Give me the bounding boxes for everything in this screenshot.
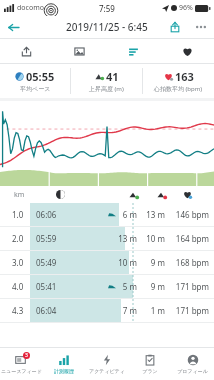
- button[interactable]: More options: [188, 16, 214, 38]
- staticText: km: [14, 190, 25, 200]
- staticText: アクティビティ: [89, 368, 125, 374]
- staticText: 6 m: [109, 209, 137, 220]
- button[interactable]: 05:55: [0, 64, 70, 98]
- staticText: 05:41: [36, 281, 57, 292]
- staticText: 3: [25, 352, 28, 359]
- staticText: ニュースフィード: [1, 368, 42, 374]
- button[interactable]: 3: [0, 348, 42, 380]
- staticText: 7 m: [109, 305, 137, 316]
- button[interactable]: アクティビティ: [85, 348, 128, 380]
- staticText: 9 m: [137, 257, 165, 268]
- button[interactable]: プロフィール: [171, 348, 214, 380]
- staticText: 4.3: [12, 305, 24, 316]
- button[interactable]: 41: [71, 64, 142, 98]
- staticText: 4.0: [12, 281, 24, 292]
- staticText: 13 m: [137, 209, 165, 220]
- staticText: 96%: [179, 3, 193, 13]
- staticText: 平均ペース: [20, 85, 51, 93]
- staticText: 1 m: [137, 305, 165, 316]
- staticText: 163: [175, 69, 194, 84]
- button[interactable]: 4.0: [0, 275, 214, 298]
- staticText: 05:55: [26, 69, 55, 84]
- staticText: 05:59: [36, 233, 57, 244]
- button[interactable]: Share: [162, 16, 188, 38]
- staticText: 05:49: [36, 257, 57, 268]
- button[interactable]: Chart settings: [106, 39, 160, 63]
- staticText: 06:04: [36, 305, 57, 316]
- button[interactable]: 計測履歴: [42, 348, 85, 380]
- button[interactable]: 2.0: [0, 227, 214, 250]
- button[interactable]: Export: [0, 39, 53, 63]
- staticText: 13 m: [109, 233, 137, 244]
- button[interactable]: 4.3: [0, 299, 214, 322]
- staticText: 計測履歴: [54, 368, 74, 374]
- button[interactable]: 163: [143, 64, 214, 98]
- staticText: 2019/11/25 - 6:45: [66, 20, 148, 34]
- staticText: 164 bpm: [165, 233, 209, 244]
- staticText: 171 bpm: [165, 305, 209, 316]
- staticText: 168 bpm: [165, 257, 209, 268]
- staticText: 2.0: [12, 233, 24, 244]
- staticText: 10 m: [137, 233, 165, 244]
- button[interactable]: 1.0: [0, 203, 214, 226]
- button[interactable]: プラン: [128, 348, 171, 380]
- staticText: 3.0: [12, 257, 24, 268]
- staticText: 10 m: [109, 257, 137, 268]
- staticText: 1.0: [12, 209, 24, 220]
- staticText: 上昇高度 (m): [89, 85, 124, 93]
- staticText: プラン: [142, 368, 158, 374]
- staticText: 5 m: [109, 281, 137, 292]
- staticText: docomo: [17, 3, 44, 13]
- staticText: 06:06: [36, 209, 57, 220]
- staticText: プロフィール: [177, 368, 208, 374]
- button[interactable]: Favorite: [160, 39, 214, 63]
- button[interactable]: Back: [0, 16, 26, 38]
- staticText: 41: [106, 69, 119, 84]
- staticText: 171 bpm: [165, 281, 209, 292]
- staticText: 9 m: [137, 281, 165, 292]
- button[interactable]: 3.0: [0, 251, 214, 274]
- staticText: 心拍数平均 (bpm): [154, 85, 203, 93]
- staticText: 146 bpm: [165, 209, 209, 220]
- button[interactable]: Photos: [53, 39, 106, 63]
- staticText: 7:59: [99, 3, 115, 14]
